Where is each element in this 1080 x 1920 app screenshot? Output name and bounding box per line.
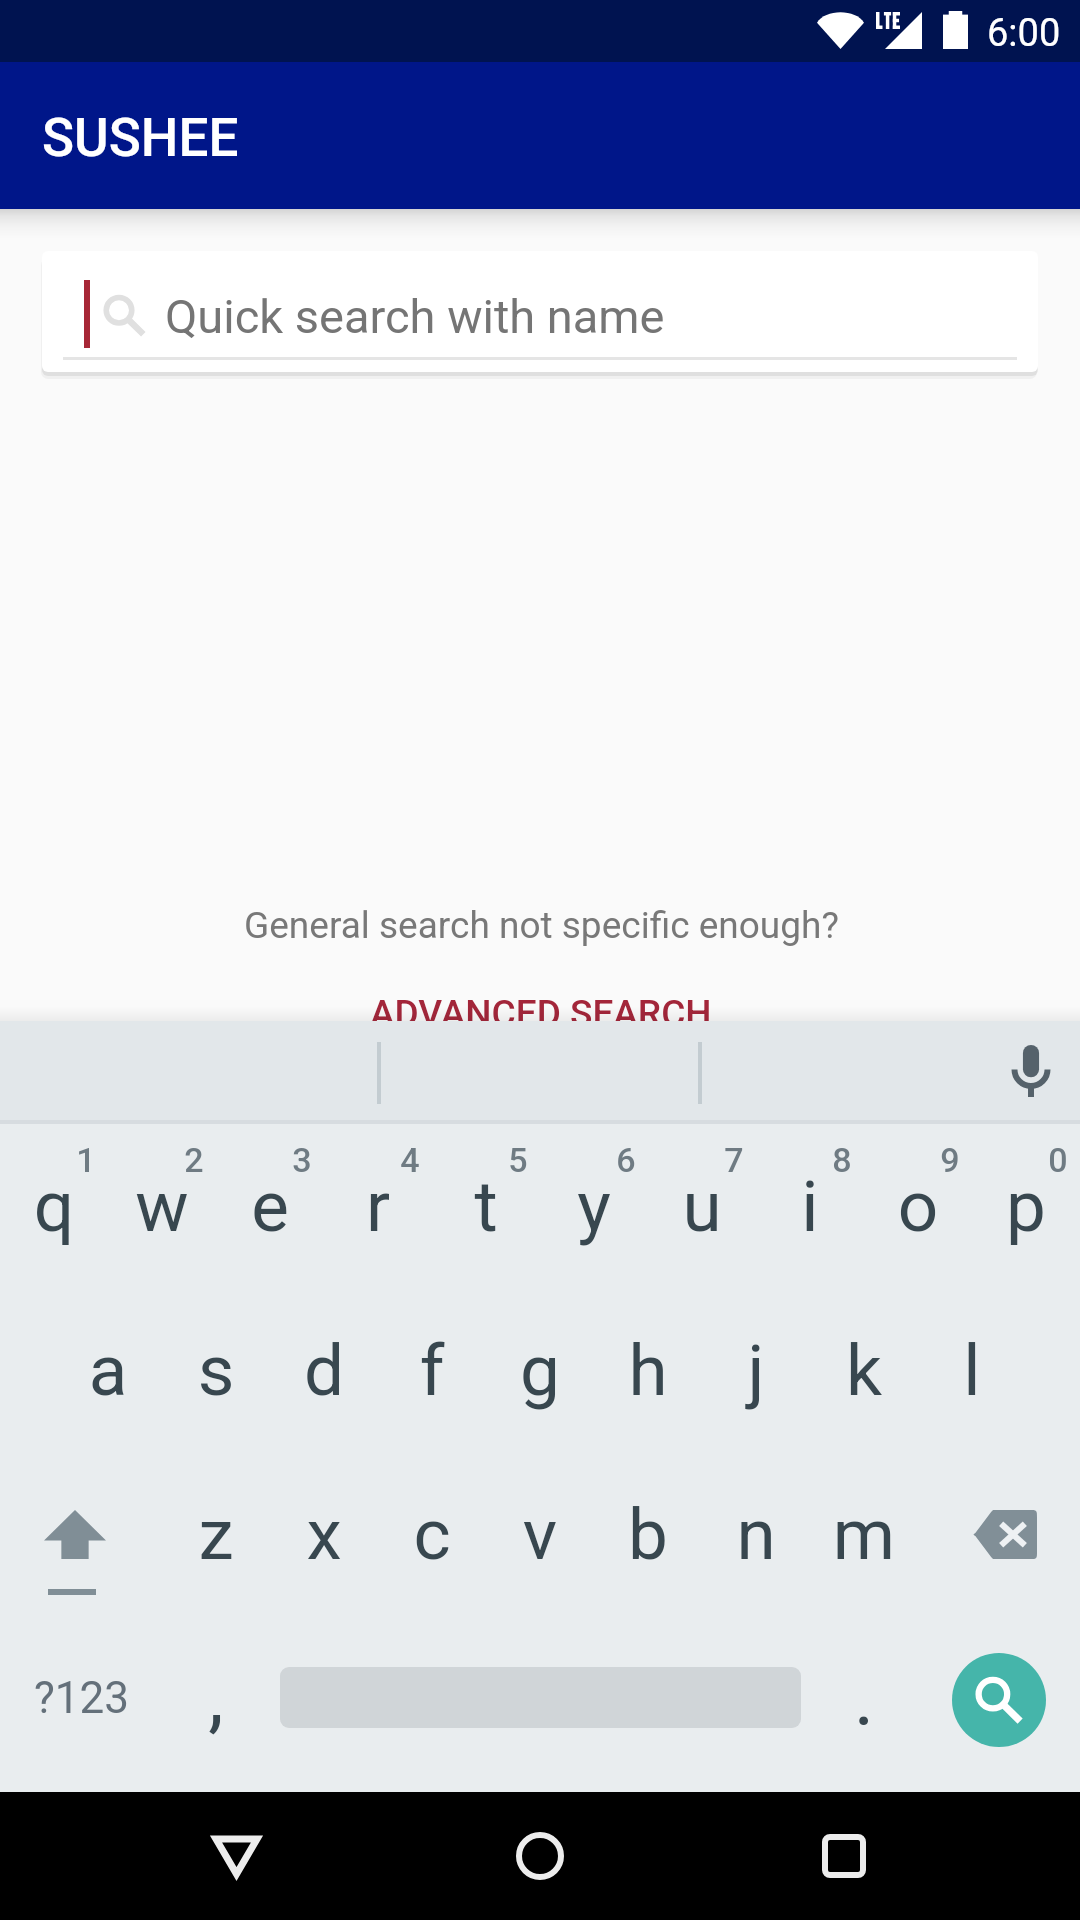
button[interactable]: k xyxy=(810,1329,918,1418)
button[interactable]: x xyxy=(270,1493,378,1582)
staticText: y xyxy=(540,1165,648,1248)
staticText: r xyxy=(324,1165,432,1248)
staticText: , xyxy=(162,1651,270,1742)
staticText: n xyxy=(702,1493,810,1576)
staticText: p xyxy=(972,1165,1080,1248)
staticText: v xyxy=(486,1493,594,1576)
button[interactable]: r xyxy=(324,1165,432,1254)
button[interactable]: , xyxy=(162,1651,270,1749)
staticText: j xyxy=(702,1329,810,1412)
button[interactable]: a xyxy=(54,1329,162,1418)
staticText: a xyxy=(54,1329,162,1412)
button[interactable]: j xyxy=(702,1329,810,1418)
staticText: x xyxy=(270,1493,378,1576)
button[interactable]: Quick search with name xyxy=(42,251,1038,372)
button[interactable]: Shift xyxy=(0,1480,150,1610)
staticText: z xyxy=(162,1493,270,1576)
staticText: General search not specific enough? xyxy=(244,904,839,947)
button[interactable]: c xyxy=(378,1493,486,1582)
staticText: 5 xyxy=(464,1140,572,1180)
staticText: f xyxy=(378,1329,486,1412)
staticText: 9 xyxy=(896,1140,1004,1180)
staticText: s xyxy=(162,1329,270,1412)
button[interactable]: Voice input xyxy=(993,1033,1069,1109)
staticText: e xyxy=(216,1165,324,1248)
button[interactable]: g xyxy=(486,1329,594,1418)
staticText: m xyxy=(810,1493,918,1576)
staticText: t xyxy=(432,1165,540,1248)
button[interactable]: l xyxy=(918,1329,1026,1418)
staticText: k xyxy=(810,1329,918,1412)
button[interactable]: Home xyxy=(460,1792,620,1920)
button[interactable]: p xyxy=(972,1165,1080,1254)
button[interactable]: i xyxy=(756,1165,864,1254)
button[interactable]: Recents xyxy=(764,1792,924,1920)
button[interactable]: w xyxy=(108,1165,216,1254)
staticText: 2 xyxy=(140,1140,248,1180)
staticText: . xyxy=(810,1653,918,1744)
button[interactable]: b xyxy=(594,1493,702,1582)
staticText: 8 xyxy=(788,1140,896,1180)
staticText: w xyxy=(108,1165,216,1248)
staticText: q xyxy=(0,1165,108,1248)
staticText: b xyxy=(594,1493,702,1576)
staticText: ?123 xyxy=(34,1672,129,1724)
button[interactable]: Search xyxy=(952,1653,1046,1747)
staticText: 6:00 xyxy=(987,11,1061,56)
staticText: g xyxy=(486,1329,594,1412)
button[interactable]: z xyxy=(162,1493,270,1582)
staticText: i xyxy=(756,1165,864,1248)
staticText: u xyxy=(648,1165,756,1248)
staticText: 4 xyxy=(356,1140,464,1180)
button[interactable]: ?123 xyxy=(0,1645,160,1755)
button[interactable]: e xyxy=(216,1165,324,1254)
button[interactable]: v xyxy=(486,1493,594,1582)
button[interactable]: f xyxy=(378,1329,486,1418)
staticText: 3 xyxy=(248,1140,356,1180)
button[interactable]: u xyxy=(648,1165,756,1254)
button[interactable]: s xyxy=(162,1329,270,1418)
button[interactable]: o xyxy=(864,1165,972,1254)
button[interactable]: ADVANCED SEARCH xyxy=(330,970,750,1060)
staticText: c xyxy=(378,1493,486,1576)
button[interactable]: q xyxy=(0,1165,108,1254)
button[interactable]: h xyxy=(594,1329,702,1418)
staticText: 0 xyxy=(1004,1140,1080,1180)
staticText: 1 xyxy=(32,1140,140,1180)
staticText: SUSHEE xyxy=(42,107,239,169)
staticText: l xyxy=(918,1329,1026,1412)
staticText: 6 xyxy=(572,1140,680,1180)
button[interactable]: m xyxy=(810,1493,918,1582)
staticText: o xyxy=(864,1165,972,1248)
button[interactable]: n xyxy=(702,1493,810,1582)
staticText: 7 xyxy=(680,1140,788,1180)
staticText: h xyxy=(594,1329,702,1412)
button[interactable]: d xyxy=(270,1329,378,1418)
button[interactable]: y xyxy=(540,1165,648,1254)
staticText: Quick search with name xyxy=(165,289,665,344)
button[interactable]: . xyxy=(810,1653,918,1751)
staticText: ADVANCED SEARCH xyxy=(370,992,712,1035)
button[interactable]: Backspace xyxy=(930,1480,1080,1610)
button[interactable]: Back xyxy=(156,1792,316,1920)
button[interactable]: t xyxy=(432,1165,540,1254)
staticText: d xyxy=(270,1329,378,1412)
